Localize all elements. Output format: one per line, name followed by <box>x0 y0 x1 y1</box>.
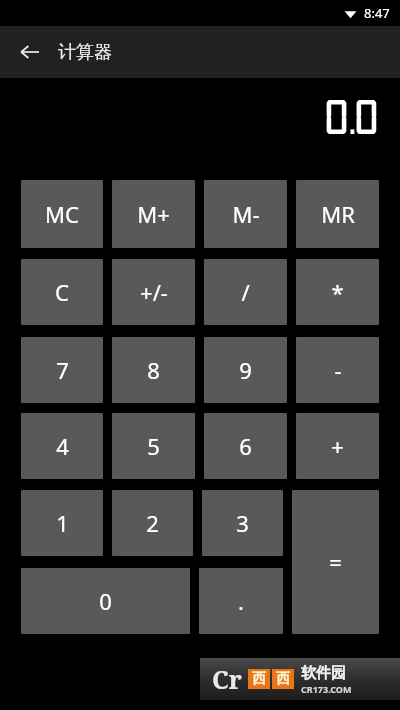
button[interactable]: 7 <box>21 337 103 403</box>
staticText: C <box>55 277 69 307</box>
staticText: 8:47 <box>364 4 390 22</box>
button[interactable]: 5 <box>112 413 195 479</box>
staticText: 9 <box>239 355 252 385</box>
staticText: 8 <box>147 355 160 385</box>
staticText: + <box>331 431 344 461</box>
staticText: 1 <box>56 508 69 538</box>
staticText: CR173.COM <box>301 683 352 695</box>
button[interactable]: 1 <box>21 490 103 556</box>
staticText: 3 <box>236 508 249 538</box>
staticText: 0 <box>99 586 112 616</box>
button[interactable]: +/- <box>112 259 195 325</box>
button[interactable]: + <box>296 413 379 479</box>
button[interactable]: 2 <box>112 490 193 556</box>
button[interactable]: MC <box>21 180 103 248</box>
button[interactable]: Back <box>12 34 48 70</box>
button[interactable]: 9 <box>204 337 287 403</box>
button[interactable]: M+ <box>112 180 195 248</box>
staticText: / <box>241 277 250 307</box>
button[interactable]: MR <box>296 180 379 248</box>
button[interactable]: / <box>204 259 287 325</box>
button[interactable]: 4 <box>21 413 103 479</box>
button[interactable]: C <box>21 259 103 325</box>
staticText: 4 <box>56 431 69 461</box>
button[interactable]: * <box>296 259 379 325</box>
button[interactable]: . <box>199 568 283 634</box>
staticText: M+ <box>137 199 170 229</box>
staticText: 西 <box>276 670 290 688</box>
button[interactable]: 0 <box>21 568 190 634</box>
staticText: 6 <box>239 431 252 461</box>
staticText: = <box>329 547 342 577</box>
staticText: - <box>334 355 342 385</box>
button[interactable]: M- <box>204 180 287 248</box>
staticText: 7 <box>56 355 69 385</box>
button[interactable]: 3 <box>202 490 283 556</box>
staticText: * <box>331 277 344 307</box>
button[interactable]: 6 <box>204 413 287 479</box>
button[interactable]: = <box>292 490 379 634</box>
staticText: M- <box>232 199 260 229</box>
button[interactable]: - <box>296 337 379 403</box>
staticText: 软件园 <box>301 664 346 683</box>
staticText: . <box>238 586 244 616</box>
staticText: 西 <box>252 670 266 688</box>
staticText: MR <box>321 199 355 229</box>
button[interactable]: 8 <box>112 337 195 403</box>
staticText: 2 <box>146 508 159 538</box>
staticText: 计算器 <box>58 41 112 64</box>
staticText: Cr <box>212 662 242 696</box>
staticText: 5 <box>147 431 160 461</box>
staticText: +/- <box>140 277 168 307</box>
staticText: MC <box>45 199 79 229</box>
